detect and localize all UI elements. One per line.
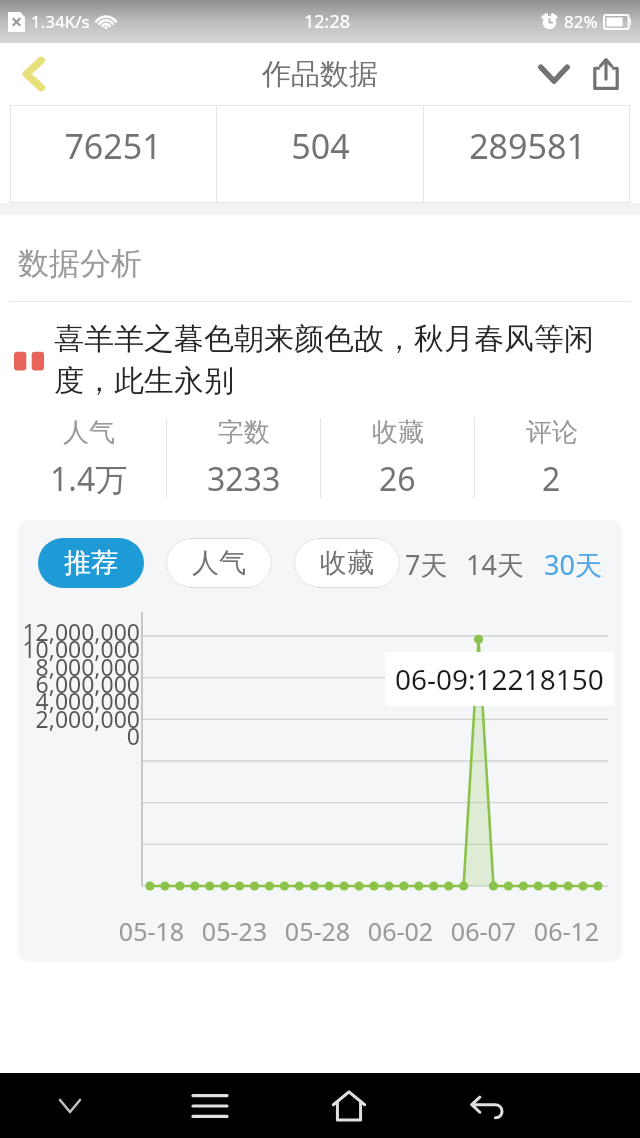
button[interactable]: 人气 <box>166 538 272 588</box>
staticText: 06-09:12218150 <box>395 660 604 698</box>
button[interactable]: 收藏 <box>294 538 400 588</box>
staticText: 字数 <box>218 416 270 449</box>
staticText: 504 <box>291 123 350 169</box>
staticText: 人气 <box>192 546 246 580</box>
button[interactable]: 喜羊羊之暮色朝来颜色故，秋月春风等闲度，此生永别 <box>14 320 626 400</box>
staticText: 收藏 <box>320 546 374 580</box>
button[interactable]: 人气 <box>12 410 166 506</box>
staticText: 30天 <box>544 546 602 583</box>
staticText: 2 <box>542 457 561 501</box>
button[interactable]: Menu <box>140 1073 279 1138</box>
staticText: 14天 <box>466 546 524 583</box>
button[interactable]: Home <box>279 1073 418 1138</box>
staticText: 人气 <box>63 416 115 449</box>
staticText: 0 <box>18 720 140 751</box>
staticText: 4,000,000 <box>18 685 140 716</box>
button[interactable]: Back <box>418 1073 557 1138</box>
button[interactable]: 字数 <box>167 410 320 506</box>
staticText: 喜羊羊之暮色朝来颜色故，秋月春风等闲度，此生永别 <box>54 320 626 400</box>
button[interactable]: Share <box>580 48 632 100</box>
staticText: 8,000,000 <box>18 651 140 682</box>
staticText: 10,000,000 <box>18 633 140 664</box>
staticText: 05-28 <box>276 914 359 948</box>
button[interactable]: 504 <box>217 105 423 203</box>
staticText: 06-07 <box>442 914 525 948</box>
staticText: 26 <box>379 457 416 501</box>
staticText: 作品数据 <box>262 56 378 93</box>
button[interactable]: 289581 <box>424 105 630 203</box>
staticText: 1.4万 <box>50 457 128 501</box>
staticText: 7天 <box>405 546 448 583</box>
staticText: 数据分析 <box>18 244 142 283</box>
button[interactable]: 76251 <box>10 105 216 203</box>
staticText: 76251 <box>64 123 162 169</box>
button[interactable]: Expand <box>528 48 580 100</box>
button[interactable]: Back <box>6 46 62 102</box>
staticText: 3233 <box>207 457 281 501</box>
staticText: 05-23 <box>193 914 276 948</box>
button[interactable]: 14天 <box>462 546 528 583</box>
button[interactable]: 评论 <box>475 410 628 506</box>
button[interactable]: 30天 <box>540 546 606 583</box>
staticText: 推荐 <box>64 546 118 580</box>
staticText: 12:28 <box>304 9 351 34</box>
button[interactable]: 7天 <box>401 546 452 583</box>
staticText: 82% <box>564 10 598 33</box>
staticText: 06-12 <box>525 914 608 948</box>
staticText: 12,000,000 <box>18 616 140 647</box>
staticText: 6,000,000 <box>18 668 140 699</box>
button[interactable]: Hide <box>0 1073 140 1138</box>
staticText: 1.34K/s <box>31 10 90 33</box>
staticText: 收藏 <box>372 416 424 449</box>
staticText: 06-02 <box>359 914 442 948</box>
button[interactable]: 推荐 <box>38 538 144 588</box>
staticText: 2,000,000 <box>18 703 140 734</box>
staticText: 评论 <box>526 416 578 449</box>
button[interactable]: 收藏 <box>321 410 474 506</box>
staticText: 05-18 <box>110 914 193 948</box>
staticText: 289581 <box>469 123 586 169</box>
